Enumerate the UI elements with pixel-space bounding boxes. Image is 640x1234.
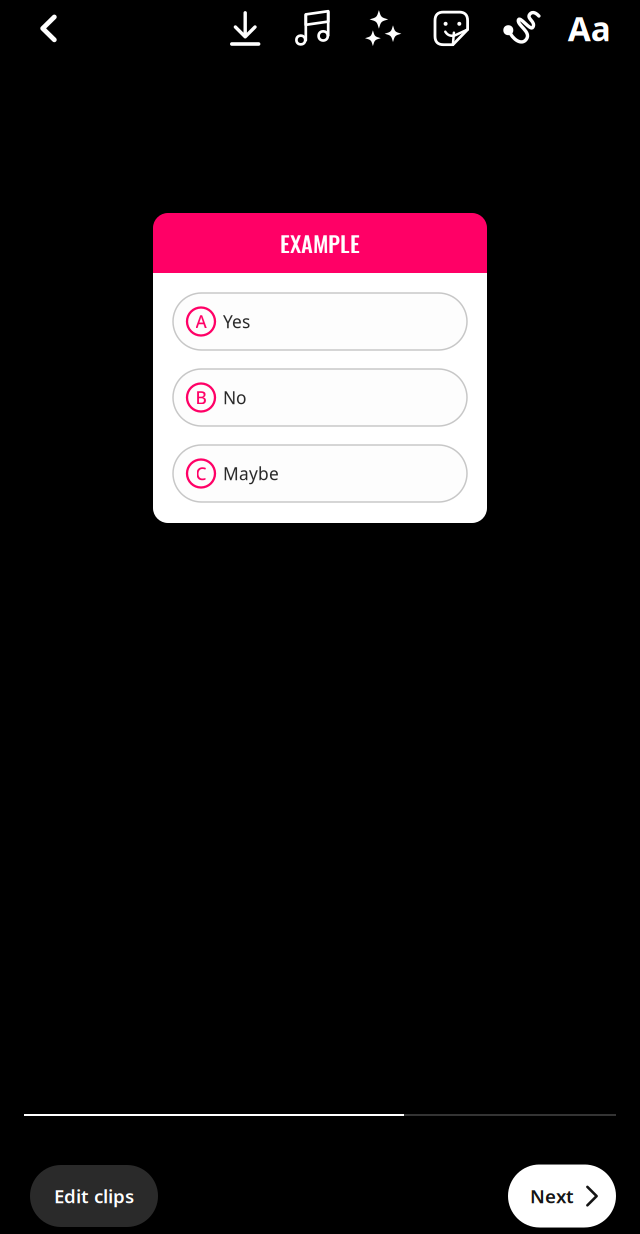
staticText: Edit clips [54,1184,134,1208]
button[interactable]: Effects [354,0,412,57]
button[interactable]: Back [19,0,77,57]
staticText: B [195,386,206,409]
button[interactable]: Music [284,0,342,57]
button[interactable]: EXAMPLE [153,213,487,523]
staticText: Maybe [223,462,279,485]
button[interactable]: Next [508,1164,616,1227]
staticText: Yes [223,310,250,333]
button[interactable]: Draw [492,0,550,57]
staticText: Next [530,1184,574,1208]
button[interactable]: Text [560,0,618,57]
button[interactable]: Stickers [422,0,480,57]
staticText: C [195,462,206,485]
button[interactable]: Edit clips [30,1165,158,1227]
staticText: Aa [568,6,611,51]
staticText: No [223,386,246,409]
button[interactable]: Save to camera roll [216,0,274,57]
staticText: EXAMPLE [280,226,360,260]
staticText: A [195,310,206,333]
